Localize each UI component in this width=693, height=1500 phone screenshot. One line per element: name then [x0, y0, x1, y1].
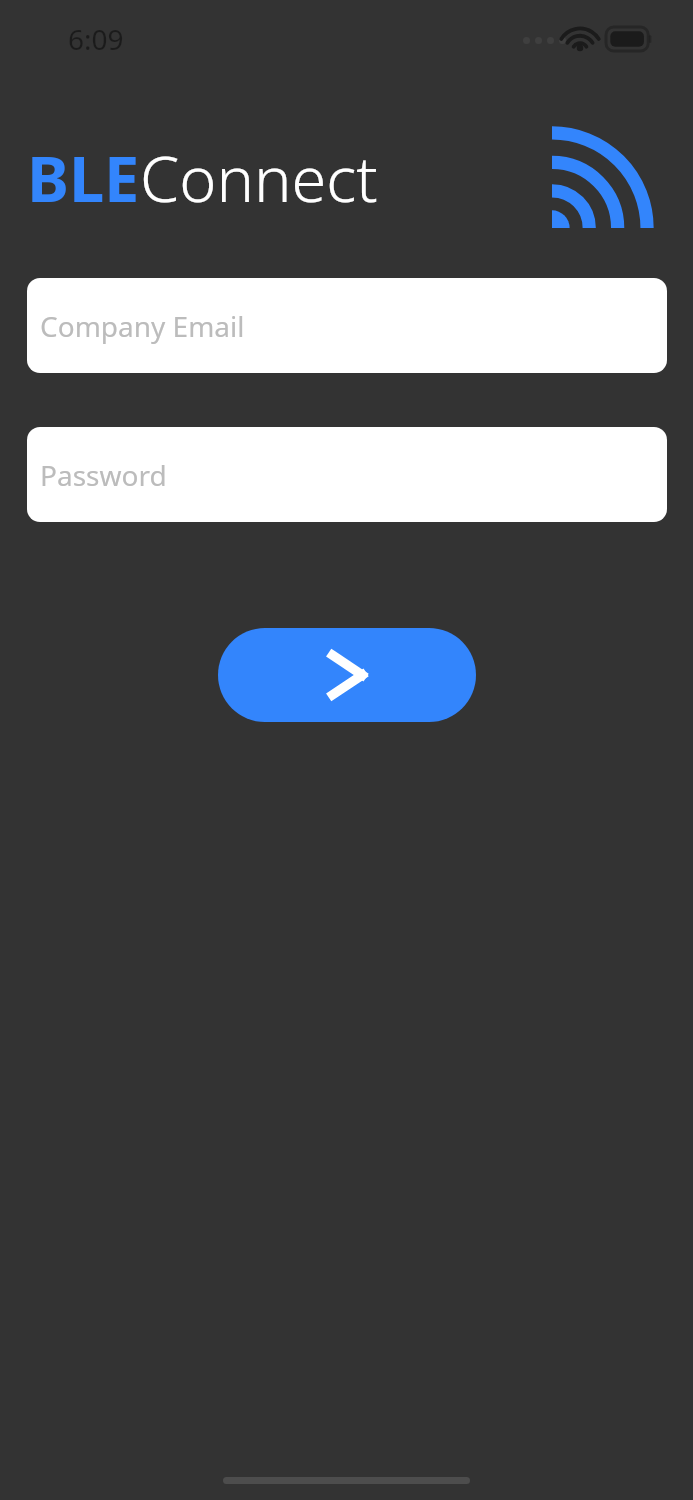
- staticText: Connect: [140, 135, 378, 221]
- button[interactable]: Company Email: [27, 278, 667, 373]
- button[interactable]: Sign in: [218, 628, 476, 722]
- staticText: 6:09: [68, 20, 124, 58]
- button[interactable]: Password: [27, 427, 667, 522]
- staticText: BLE: [27, 135, 140, 221]
- staticText: Company Email: [40, 307, 245, 345]
- staticText: Password: [40, 456, 167, 494]
